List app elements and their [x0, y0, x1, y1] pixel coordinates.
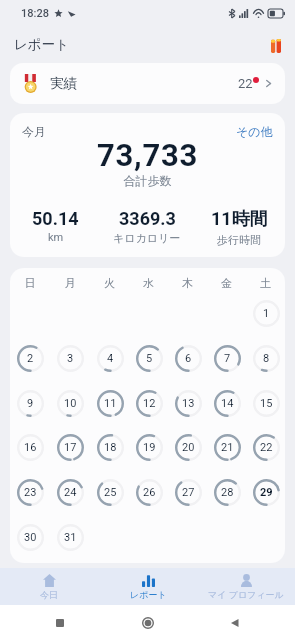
- button[interactable]: レポート: [99, 568, 197, 605]
- staticText: 50.14: [32, 208, 79, 229]
- button[interactable]: その他: [236, 124, 273, 139]
- button[interactable]: 25: [91, 472, 129, 512]
- staticText: 18:28: [21, 7, 49, 20]
- staticText: 17: [64, 441, 77, 454]
- staticText: 26: [143, 486, 156, 499]
- staticText: 15: [260, 397, 273, 410]
- staticText: 3369.3: [119, 208, 176, 229]
- button[interactable]: 実績: [10, 63, 285, 104]
- staticText: 24: [64, 486, 77, 499]
- button[interactable]: 22: [247, 427, 285, 467]
- staticText: 合計歩数: [10, 173, 285, 188]
- staticText: 27: [182, 486, 195, 499]
- staticText: 28: [221, 486, 234, 499]
- button[interactable]: 今日: [0, 568, 98, 605]
- staticText: 18: [104, 441, 117, 454]
- staticText: 22: [260, 441, 273, 454]
- staticText: 11: [104, 397, 117, 410]
- staticText: レポート: [14, 36, 69, 53]
- staticText: km: [48, 231, 64, 244]
- staticText: キロカロリー: [113, 231, 181, 245]
- staticText: 22: [238, 76, 253, 91]
- button[interactable]: 2: [11, 338, 49, 378]
- button[interactable]: 19: [130, 427, 168, 467]
- staticText: マイ プロフィール: [208, 589, 284, 600]
- staticText: その他: [236, 124, 273, 139]
- button[interactable]: 9: [11, 383, 49, 423]
- staticText: 21: [221, 441, 234, 454]
- button[interactable]: 16: [11, 427, 49, 467]
- staticText: 19: [143, 441, 156, 454]
- button[interactable]: 29: [247, 472, 285, 512]
- button[interactable]: 21: [208, 427, 246, 467]
- button[interactable]: 28: [208, 472, 246, 512]
- button[interactable]: 5: [130, 338, 168, 378]
- button[interactable]: 4: [91, 338, 129, 378]
- staticText: 5: [146, 352, 153, 365]
- staticText: 月: [50, 276, 90, 290]
- button[interactable]: 14: [208, 383, 246, 423]
- button[interactable]: 27: [169, 472, 207, 512]
- staticText: 1: [263, 307, 270, 320]
- button[interactable]: Back: [225, 613, 245, 633]
- button[interactable]: 12: [130, 383, 168, 423]
- staticText: 7: [224, 352, 231, 365]
- staticText: 23: [24, 486, 37, 499]
- staticText: 火: [90, 276, 129, 290]
- button[interactable]: 18: [91, 427, 129, 467]
- button[interactable]: 7: [208, 338, 246, 378]
- button[interactable]: 8: [247, 338, 285, 378]
- button[interactable]: マイ プロフィール: [197, 568, 295, 605]
- button[interactable]: 20: [169, 427, 207, 467]
- button[interactable]: 1: [247, 293, 285, 333]
- button[interactable]: 31: [51, 517, 89, 557]
- button[interactable]: 23: [11, 472, 49, 512]
- staticText: 6: [185, 352, 192, 365]
- button[interactable]: 10: [51, 383, 89, 423]
- staticText: 14: [221, 397, 234, 410]
- staticText: 29: [260, 486, 273, 499]
- staticText: 今月: [22, 124, 46, 139]
- staticText: 11時間: [211, 208, 268, 231]
- staticText: 12: [143, 397, 156, 410]
- button[interactable]: 24: [51, 472, 89, 512]
- staticText: 2: [27, 352, 34, 365]
- staticText: 73,733: [10, 137, 285, 173]
- staticText: 歩行時間: [217, 233, 261, 247]
- staticText: 4: [107, 352, 114, 365]
- staticText: 水: [129, 276, 168, 290]
- staticText: 8: [263, 352, 270, 365]
- button[interactable]: 6: [169, 338, 207, 378]
- staticText: 実績: [50, 75, 77, 92]
- staticText: 9: [27, 397, 34, 410]
- button[interactable]: 11: [91, 383, 129, 423]
- button[interactable]: 13: [169, 383, 207, 423]
- staticText: 20: [182, 441, 195, 454]
- staticText: 13: [182, 397, 195, 410]
- button[interactable]: Recents: [50, 613, 70, 633]
- staticText: 土: [246, 276, 285, 290]
- staticText: 3: [67, 352, 74, 365]
- staticText: 木: [168, 276, 207, 290]
- staticText: 30: [24, 531, 37, 544]
- staticText: 16: [24, 441, 37, 454]
- staticText: レポート: [130, 589, 167, 600]
- button[interactable]: 26: [130, 472, 168, 512]
- button[interactable]: Streak: [265, 34, 287, 56]
- button[interactable]: 30: [11, 517, 49, 557]
- button[interactable]: 17: [51, 427, 89, 467]
- button[interactable]: 3: [51, 338, 89, 378]
- staticText: 日: [10, 276, 50, 290]
- staticText: 10: [64, 397, 77, 410]
- staticText: 金: [207, 276, 246, 290]
- staticText: 31: [64, 531, 77, 544]
- staticText: 今日: [40, 589, 58, 600]
- staticText: 25: [104, 486, 117, 499]
- button[interactable]: Home: [138, 613, 158, 633]
- button[interactable]: 15: [247, 383, 285, 423]
